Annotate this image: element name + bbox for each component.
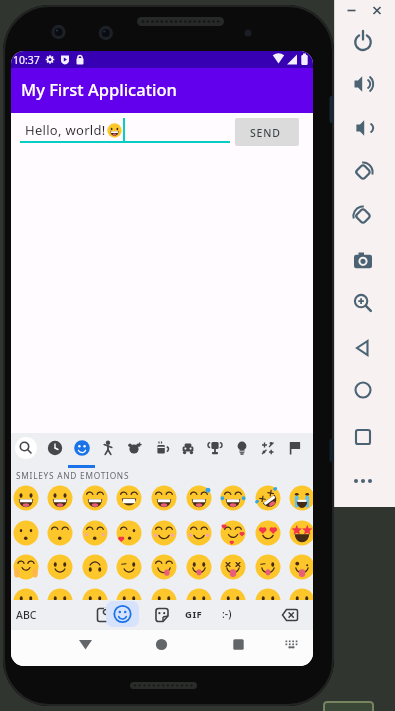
- button[interactable]: [47, 554, 73, 580]
- staticText: 10:37: [13, 53, 40, 67]
- button[interactable]: [13, 554, 39, 580]
- staticText: :-): [222, 607, 232, 621]
- button[interactable]: [82, 485, 108, 511]
- button[interactable]: [116, 554, 142, 580]
- button[interactable]: [349, 114, 377, 142]
- button[interactable]: [220, 588, 246, 614]
- button[interactable]: [186, 485, 212, 511]
- button[interactable]: [289, 485, 313, 511]
- staticText: SMILEYS AND EMOTIONS: [16, 470, 130, 481]
- button[interactable]: [82, 588, 108, 614]
- button[interactable]: [151, 554, 177, 580]
- button[interactable]: SEND: [235, 118, 299, 146]
- button[interactable]: [226, 632, 251, 657]
- button[interactable]: [349, 158, 377, 186]
- button[interactable]: [349, 70, 377, 98]
- button[interactable]: [116, 520, 142, 546]
- button[interactable]: [186, 520, 212, 546]
- button[interactable]: [20, 113, 230, 153]
- button[interactable]: [255, 554, 281, 580]
- staticText: ABC: [16, 608, 37, 622]
- button[interactable]: [349, 376, 377, 404]
- button[interactable]: [91, 602, 115, 628]
- button[interactable]: [13, 485, 39, 511]
- button[interactable]: [349, 467, 377, 495]
- button[interactable]: [220, 554, 246, 580]
- button[interactable]: [47, 520, 73, 546]
- button[interactable]: [220, 520, 246, 546]
- button[interactable]: [47, 588, 73, 614]
- button[interactable]: [13, 588, 39, 614]
- button[interactable]: [349, 334, 377, 362]
- button[interactable]: [116, 485, 142, 511]
- button[interactable]: [289, 520, 313, 546]
- button[interactable]: [279, 632, 304, 657]
- button[interactable]: [349, 423, 377, 451]
- button[interactable]: [96, 436, 120, 460]
- button[interactable]: [73, 632, 98, 657]
- button[interactable]: [151, 588, 177, 614]
- button[interactable]: [14, 436, 38, 460]
- button[interactable]: [278, 602, 302, 628]
- button[interactable]: [256, 436, 280, 460]
- button[interactable]: [289, 588, 313, 614]
- button[interactable]: [255, 520, 281, 546]
- button[interactable]: [47, 485, 73, 511]
- button[interactable]: [116, 588, 142, 614]
- button[interactable]: [43, 436, 67, 460]
- button[interactable]: [149, 632, 174, 657]
- button[interactable]: [349, 289, 377, 317]
- button[interactable]: [151, 485, 177, 511]
- button[interactable]: [220, 485, 246, 511]
- button[interactable]: GIF: [183, 602, 207, 628]
- button[interactable]: [255, 485, 281, 511]
- button[interactable]: [255, 588, 281, 614]
- button[interactable]: [70, 436, 94, 460]
- staticText: Hello, world!: [25, 121, 106, 139]
- button[interactable]: [186, 554, 212, 580]
- staticText: SEND: [250, 126, 281, 140]
- button[interactable]: :-): [219, 602, 243, 628]
- button[interactable]: [289, 554, 313, 580]
- button[interactable]: [106, 601, 139, 627]
- button[interactable]: [230, 436, 254, 460]
- button[interactable]: [150, 602, 174, 628]
- button[interactable]: [151, 520, 177, 546]
- button[interactable]: [13, 520, 39, 546]
- staticText: GIF: [185, 608, 203, 621]
- button[interactable]: [283, 436, 307, 460]
- button[interactable]: [186, 588, 212, 614]
- staticText: My First Application: [21, 78, 177, 100]
- button[interactable]: [123, 436, 147, 460]
- button[interactable]: [82, 554, 108, 580]
- button[interactable]: [349, 247, 377, 275]
- button[interactable]: [150, 436, 174, 460]
- button[interactable]: [82, 520, 108, 546]
- button[interactable]: [203, 436, 227, 460]
- button[interactable]: [349, 202, 377, 230]
- button[interactable]: [176, 436, 200, 460]
- button[interactable]: [349, 27, 377, 55]
